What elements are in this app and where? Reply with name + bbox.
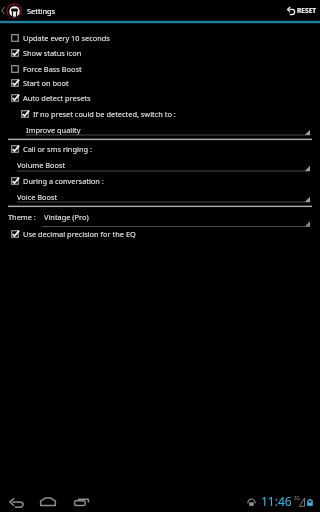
button[interactable]: Navigate up: [0, 0, 56, 21]
staticText: Start on boot: [23, 78, 69, 88]
staticText: During a conversation :: [23, 176, 104, 186]
button[interactable]: Use decimal precision for the EQ: [0, 227, 320, 241]
staticText: Volume Boost: [17, 160, 66, 170]
staticText: If no preset could be detected, switch t…: [33, 109, 176, 119]
button[interactable]: Improve quality: [0, 125, 320, 138]
staticText: Force Bass Boost: [23, 64, 82, 74]
button[interactable]: Voice Boost: [0, 192, 320, 205]
button[interactable]: During a conversation :: [0, 174, 320, 188]
button[interactable]: Show status icon: [0, 46, 320, 60]
button[interactable]: Theme :: [0, 212, 320, 227]
button[interactable]: Auto detect presets: [0, 91, 320, 105]
staticText: 3G: [294, 495, 300, 501]
button[interactable]: Home: [36, 490, 60, 512]
staticText: Theme :: [8, 212, 36, 222]
button[interactable]: Start on boot: [0, 76, 320, 90]
button[interactable]: Force Bass Boost: [0, 62, 320, 76]
button[interactable]: Volume Boost: [0, 160, 320, 174]
staticText: RESET: [297, 6, 317, 15]
button[interactable]: RESET: [281, 0, 320, 21]
staticText: Auto detect presets: [23, 93, 91, 103]
button[interactable]: Call or sms ringing :: [0, 142, 320, 156]
staticText: Vintage (Pro): [44, 212, 89, 222]
button[interactable]: Recent apps: [69, 490, 93, 512]
staticText: Settings: [27, 6, 56, 16]
staticText: 11:46: [261, 493, 292, 509]
staticText: Voice Boost: [17, 192, 58, 202]
button[interactable]: If no preset could be detected, switch t…: [0, 107, 320, 121]
staticText: Update every 10 seconds: [23, 33, 110, 43]
button[interactable]: Back: [4, 491, 28, 512]
button[interactable]: Update every 10 seconds: [0, 31, 320, 45]
staticText: Improve quality: [26, 125, 81, 135]
staticText: Use decimal precision for the EQ: [23, 229, 136, 239]
staticText: Call or sms ringing :: [23, 144, 92, 154]
staticText: Show status icon: [23, 48, 82, 58]
